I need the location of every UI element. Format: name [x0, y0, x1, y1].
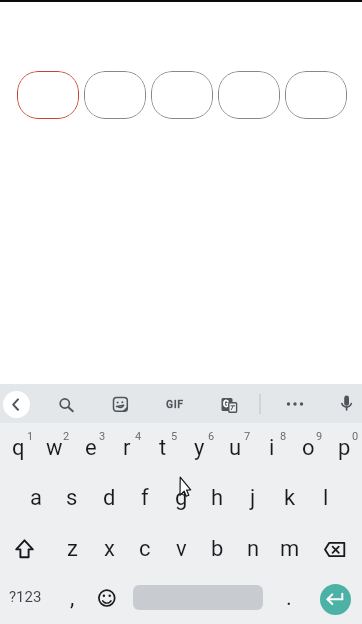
button[interactable]: u	[217, 423, 253, 473]
button[interactable]	[84, 71, 146, 119]
button[interactable]: c	[127, 524, 163, 574]
staticText: v	[176, 536, 187, 562]
button[interactable]: b	[199, 524, 235, 574]
button[interactable]: .	[271, 573, 307, 623]
button[interactable]: i	[254, 423, 290, 473]
button[interactable]: ,	[54, 573, 90, 623]
button[interactable]	[285, 71, 347, 119]
staticText: ?123	[9, 588, 42, 606]
staticText: y	[194, 435, 205, 461]
staticText: c	[139, 536, 151, 562]
staticText: 6	[208, 430, 215, 443]
staticText: a	[30, 485, 42, 511]
staticText: G	[223, 399, 230, 410]
staticText: e	[85, 435, 97, 461]
button[interactable]: l	[308, 473, 344, 523]
staticText: u	[229, 435, 242, 461]
button[interactable]: e	[73, 423, 109, 473]
staticText: r	[123, 435, 131, 461]
button[interactable]	[308, 523, 362, 573]
button[interactable]: v	[163, 524, 199, 574]
staticText: f	[141, 485, 149, 511]
button[interactable]	[17, 71, 79, 119]
button[interactable]: w	[36, 423, 72, 473]
staticText: o	[302, 435, 315, 461]
staticText: z	[67, 536, 78, 562]
button[interactable]: f	[127, 473, 163, 523]
button[interactable]	[0, 523, 54, 573]
staticText: 9	[316, 430, 323, 443]
button[interactable]: z	[54, 524, 90, 574]
staticText: 4	[135, 430, 142, 443]
staticText: n	[247, 536, 260, 562]
staticText: .	[286, 585, 292, 611]
staticText: m	[280, 536, 300, 562]
staticText: t	[159, 435, 167, 461]
button[interactable]: t	[145, 423, 181, 473]
staticText: h	[211, 485, 224, 511]
button[interactable]: o	[290, 423, 326, 473]
button[interactable]	[89, 573, 125, 623]
staticText: d	[103, 485, 116, 511]
staticText: 1	[27, 430, 34, 443]
button[interactable]	[151, 71, 213, 119]
staticText: g	[175, 485, 188, 511]
staticText: 0	[352, 430, 359, 443]
button[interactable]: n	[235, 524, 271, 574]
button[interactable]: x	[91, 524, 127, 574]
button[interactable]	[3, 391, 30, 418]
staticText: b	[211, 536, 224, 562]
button[interactable]	[280, 389, 310, 419]
staticText: k	[284, 485, 296, 511]
staticText: 5	[171, 430, 178, 443]
staticText: GIF	[166, 398, 184, 410]
button[interactable]: m	[272, 524, 308, 574]
staticText: 8	[280, 430, 287, 443]
button[interactable]: r	[109, 423, 145, 473]
button[interactable]	[51, 389, 81, 419]
button[interactable]: j	[235, 473, 271, 523]
staticText: x	[104, 536, 115, 562]
button[interactable]: g	[163, 473, 199, 523]
button[interactable]: ?123	[0, 572, 52, 622]
staticText: q	[12, 435, 25, 461]
button[interactable]: y	[181, 423, 217, 473]
staticText: ,	[70, 585, 75, 611]
button[interactable]: d	[91, 473, 127, 523]
staticText: w	[46, 435, 63, 461]
button[interactable]: s	[54, 473, 90, 523]
staticText: l	[323, 485, 329, 511]
button[interactable]	[218, 71, 280, 119]
staticText: p	[338, 435, 351, 461]
staticText: i	[269, 435, 275, 461]
button[interactable]: GIF	[160, 389, 190, 419]
button[interactable]	[214, 389, 244, 419]
button[interactable]: k	[272, 473, 308, 523]
staticText: 3	[99, 430, 106, 443]
button[interactable]: a	[18, 473, 54, 523]
staticText: 2	[63, 430, 70, 443]
button[interactable]: q	[0, 423, 36, 473]
button[interactable]: p	[326, 423, 362, 473]
button[interactable]: h	[199, 473, 235, 523]
button[interactable]	[133, 585, 263, 610]
staticText: j	[250, 485, 256, 511]
button[interactable]	[105, 389, 135, 419]
button[interactable]	[320, 584, 351, 615]
staticText: 7	[244, 430, 251, 443]
staticText: s	[66, 485, 78, 511]
button[interactable]	[330, 389, 360, 419]
